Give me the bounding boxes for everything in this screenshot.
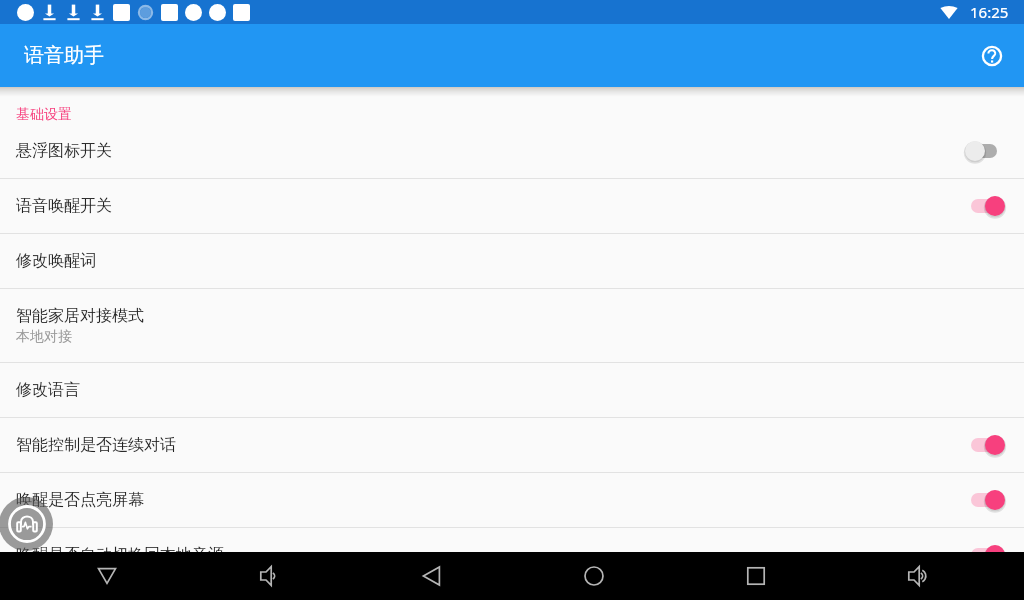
button[interactable]: 唤醒是否点亮屏幕 [0, 473, 1024, 528]
staticText: 唤醒是否自动切换回本地音源 [16, 545, 224, 565]
button[interactable]: 修改语言 [0, 363, 1024, 418]
button[interactable]: Volume down [188, 552, 351, 600]
button[interactable]: 唤醒是否自动切换回本地音源 [0, 528, 1024, 583]
button[interactable]: Help [970, 34, 1014, 78]
staticText: 语音唤醒开关 [16, 196, 112, 216]
button[interactable] [961, 138, 1001, 164]
staticText: 悬浮图标开关 [16, 141, 112, 161]
button[interactable]: Hide keyboard [25, 552, 188, 600]
button[interactable]: Home [513, 552, 675, 600]
staticText: 本地对接 [16, 328, 72, 346]
button[interactable]: Volume up [837, 552, 999, 600]
button[interactable] [961, 432, 1001, 458]
staticText: 修改语言 [16, 380, 80, 400]
staticText: 唤醒是否点亮屏幕 [16, 490, 144, 510]
button[interactable]: 修改唤醒词 [0, 234, 1024, 289]
staticText: 智能控制是否连续对话 [16, 435, 176, 455]
button[interactable] [961, 193, 1001, 219]
button[interactable] [961, 542, 1001, 568]
button[interactable]: Back [351, 552, 513, 600]
staticText: 语音助手 [24, 43, 104, 68]
staticText: 16:25 [970, 2, 1009, 22]
staticText: 智能家居对接模式 [16, 306, 144, 326]
button[interactable]: 智能控制是否连续对话 [0, 418, 1024, 473]
button[interactable]: 悬浮图标开关 [0, 124, 1024, 179]
button[interactable]: 智能家居对接模式 [0, 289, 1024, 363]
button[interactable]: 语音唤醒开关 [0, 179, 1024, 234]
button[interactable]: Recents [675, 552, 837, 600]
staticText: 基础设置 [16, 106, 72, 124]
button[interactable] [961, 487, 1001, 513]
button[interactable]: Voice assistant [0, 497, 53, 551]
staticText: 修改唤醒词 [16, 251, 96, 271]
